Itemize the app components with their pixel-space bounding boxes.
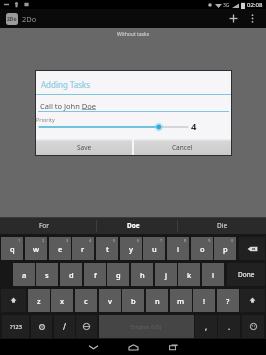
button[interactable]: q bbox=[1, 237, 23, 260]
button[interactable]: z bbox=[28, 289, 50, 312]
staticText: 3 bbox=[66, 238, 69, 243]
staticText: p bbox=[223, 244, 228, 254]
staticText: English (US) bbox=[131, 323, 162, 330]
button[interactable]: Shift bbox=[240, 289, 265, 312]
button[interactable]: d bbox=[60, 263, 82, 286]
button[interactable]: h bbox=[131, 263, 153, 286]
button[interactable]: More options bbox=[246, 9, 259, 28]
button[interactable]: ! bbox=[193, 289, 215, 312]
button[interactable]: y bbox=[120, 237, 142, 260]
button[interactable]: x bbox=[51, 289, 73, 312]
button[interactable]: b bbox=[122, 289, 144, 312]
staticText: Save bbox=[77, 143, 92, 152]
staticText: j bbox=[165, 270, 168, 280]
staticText: k bbox=[187, 270, 192, 280]
staticText: l bbox=[212, 270, 215, 280]
button[interactable]: Back bbox=[73, 339, 113, 355]
button[interactable]: k bbox=[178, 263, 200, 286]
button[interactable]: p bbox=[214, 237, 236, 260]
staticText: 1 bbox=[18, 238, 21, 243]
staticText: . bbox=[228, 321, 231, 332]
button[interactable]: g bbox=[107, 263, 129, 286]
button[interactable]: e bbox=[49, 237, 71, 260]
button[interactable]: o bbox=[191, 237, 213, 260]
staticText: q bbox=[10, 244, 15, 254]
staticText: Priority bbox=[36, 116, 55, 123]
button[interactable]: Add task bbox=[226, 9, 240, 28]
button[interactable]: Home bbox=[113, 339, 153, 355]
button[interactable]: Save bbox=[36, 139, 132, 155]
button[interactable]: a bbox=[13, 263, 35, 286]
staticText: ! bbox=[203, 296, 206, 306]
staticText: v bbox=[108, 296, 112, 306]
button[interactable]: Cancel bbox=[134, 139, 231, 155]
staticText: h bbox=[140, 270, 145, 280]
button[interactable]: ?123 bbox=[2, 315, 29, 338]
staticText: e bbox=[58, 244, 63, 254]
button[interactable]: . bbox=[218, 315, 240, 338]
staticText: 0 bbox=[231, 238, 234, 243]
button[interactable]: Emoji bbox=[242, 315, 264, 338]
staticText: 7 bbox=[160, 238, 163, 243]
button[interactable]: i bbox=[167, 237, 189, 260]
button[interactable]: n bbox=[146, 289, 168, 312]
button[interactable]: Recents bbox=[153, 339, 193, 355]
button[interactable]: ? bbox=[217, 289, 239, 312]
staticText: Doe bbox=[127, 221, 140, 230]
staticText: 6 bbox=[137, 238, 140, 243]
staticText: z bbox=[37, 296, 41, 306]
button[interactable]: Backspace bbox=[239, 237, 265, 260]
staticText: 4 bbox=[89, 238, 92, 243]
staticText: d bbox=[69, 270, 74, 280]
staticText: g bbox=[116, 270, 121, 280]
button[interactable]: Done bbox=[227, 263, 265, 286]
button[interactable]: l bbox=[202, 263, 224, 286]
button[interactable]: Die bbox=[178, 217, 266, 234]
button[interactable]: f bbox=[84, 263, 106, 286]
staticText: u bbox=[152, 244, 157, 254]
staticText: Done bbox=[238, 270, 255, 279]
button[interactable]: u bbox=[143, 237, 165, 260]
staticText: o bbox=[200, 244, 205, 254]
staticText: 2Do bbox=[22, 14, 37, 24]
staticText: 2 bbox=[42, 238, 45, 243]
staticText: Without tasks bbox=[0, 31, 266, 38]
other: Emoji bbox=[249, 322, 258, 331]
button[interactable]: r bbox=[72, 237, 94, 260]
other: Change language bbox=[82, 322, 91, 331]
button[interactable]: For bbox=[0, 217, 88, 234]
button[interactable]: j bbox=[155, 263, 177, 286]
staticText: 02:08 bbox=[247, 1, 263, 9]
button[interactable]: Doe bbox=[89, 217, 177, 234]
staticText: x bbox=[60, 296, 65, 306]
button[interactable]: c bbox=[75, 289, 97, 312]
other: Keyboard settings bbox=[38, 323, 46, 331]
staticText: b bbox=[131, 296, 136, 306]
other: Shift bbox=[248, 296, 257, 305]
staticText: Call to John Doe bbox=[40, 101, 97, 111]
button[interactable]: / bbox=[54, 315, 75, 338]
button[interactable]: Shift bbox=[1, 289, 26, 312]
button[interactable]: Change language bbox=[76, 315, 97, 338]
button[interactable]: w bbox=[25, 237, 47, 260]
staticText: Adding Tasks bbox=[41, 79, 91, 90]
staticText: / bbox=[63, 321, 66, 332]
staticText: ? bbox=[226, 296, 230, 306]
button[interactable]: v bbox=[99, 289, 121, 312]
button[interactable]: Keyboard settings bbox=[31, 315, 52, 338]
staticText: Cancel bbox=[172, 143, 193, 152]
staticText: a bbox=[22, 270, 27, 280]
staticText: i bbox=[177, 244, 180, 254]
button[interactable]: m bbox=[170, 289, 192, 312]
button[interactable]: t bbox=[96, 237, 118, 260]
staticText: t bbox=[106, 244, 109, 254]
staticText: 2Do bbox=[7, 16, 17, 23]
staticText: , bbox=[205, 321, 208, 332]
other: Backspace bbox=[247, 245, 258, 253]
staticText: 3G bbox=[223, 2, 230, 9]
button[interactable]: s bbox=[36, 263, 58, 286]
staticText: n bbox=[155, 296, 160, 306]
staticText: w bbox=[33, 244, 40, 254]
button[interactable]: , bbox=[195, 315, 217, 338]
